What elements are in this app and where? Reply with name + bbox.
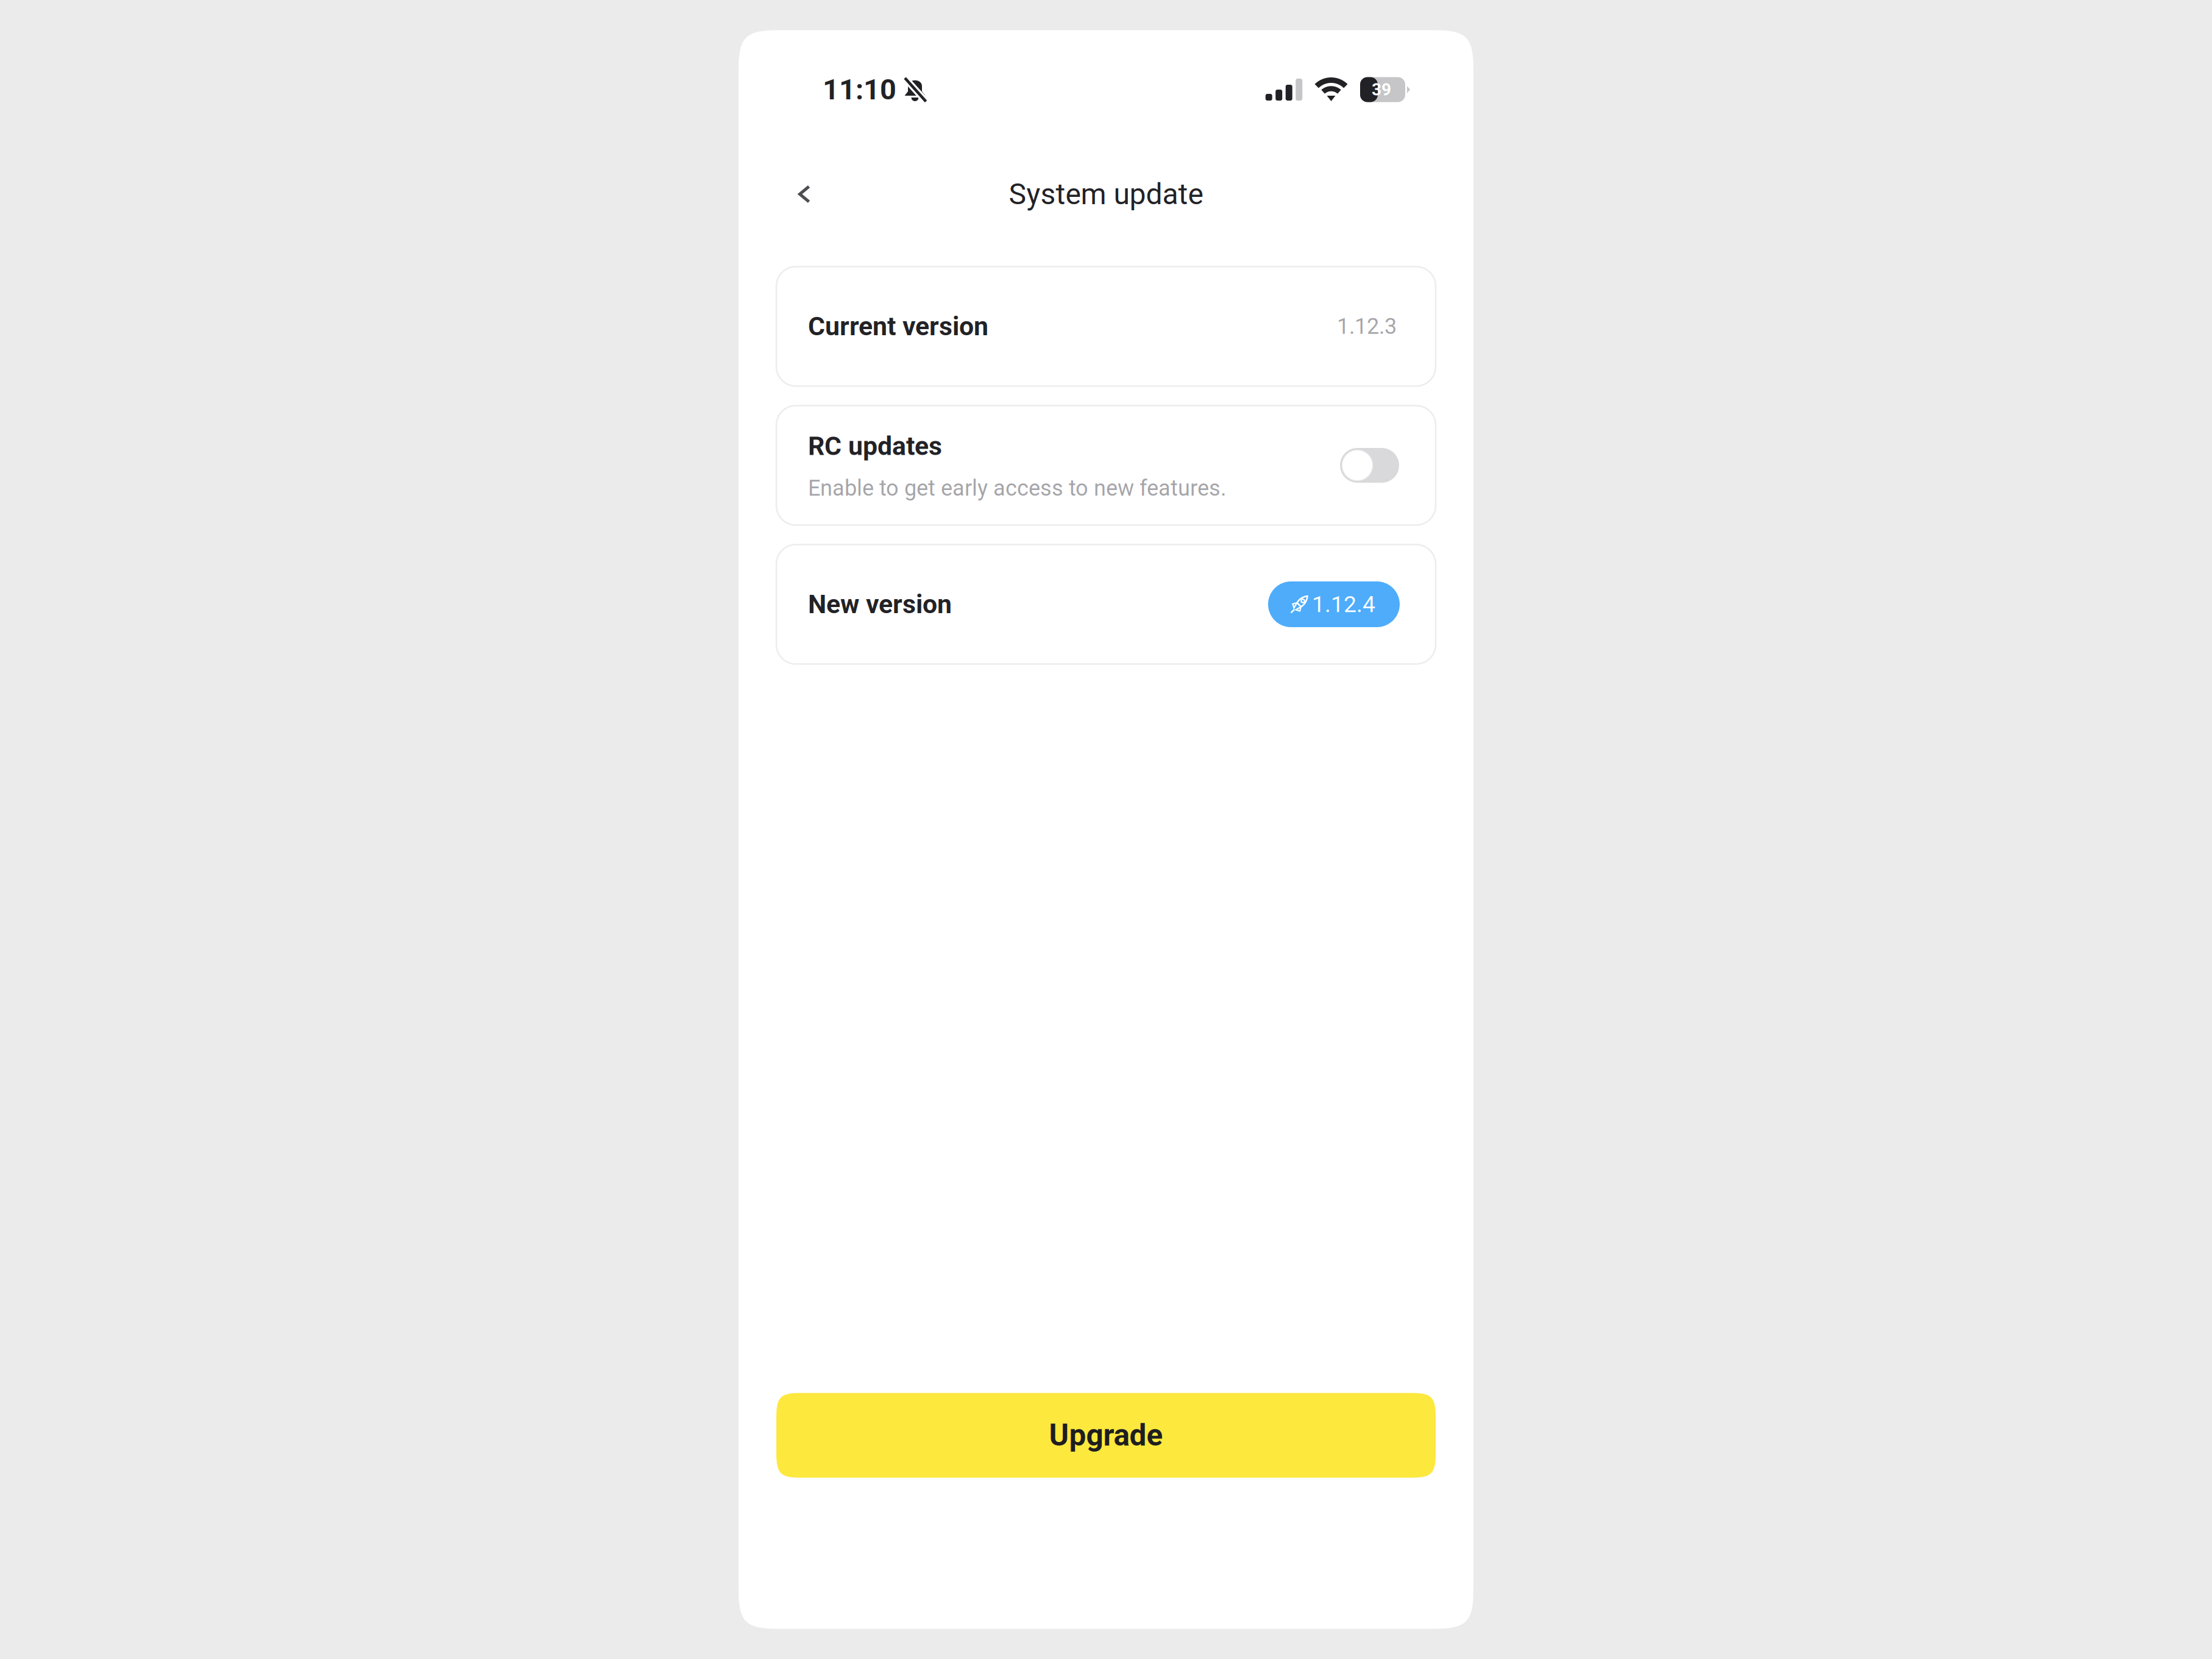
staticText: RC updates	[808, 431, 942, 461]
staticText: System update	[1009, 177, 1203, 211]
staticText: 11:10	[823, 73, 896, 106]
staticText: 1.12.4	[1312, 591, 1375, 618]
staticText: Enable to get early access to new featur…	[808, 475, 1226, 501]
button[interactable]: Upgrade	[776, 1393, 1436, 1478]
button[interactable]: 1.12.4	[1268, 581, 1400, 627]
button[interactable]: Current version	[776, 267, 1436, 386]
staticText: New version	[808, 589, 952, 620]
staticText: 39	[1372, 80, 1391, 100]
button[interactable]: Back	[771, 161, 837, 227]
staticText: 1.12.3	[1337, 314, 1397, 339]
staticText: Current version	[808, 311, 988, 342]
button[interactable]: RC updates	[1340, 448, 1399, 483]
staticText: Upgrade	[1049, 1418, 1163, 1453]
